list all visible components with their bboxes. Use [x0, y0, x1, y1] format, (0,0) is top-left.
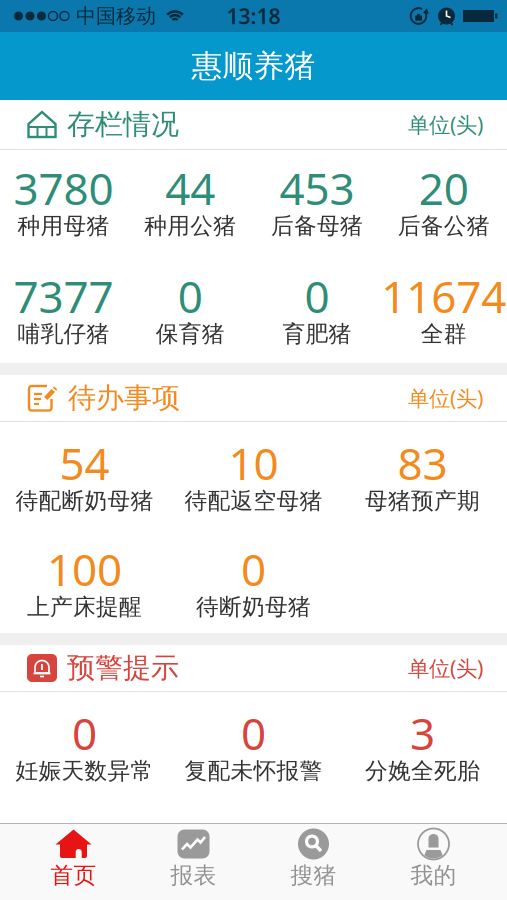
staticText: 44	[165, 159, 215, 217]
staticText: 哺乳仔猪	[17, 320, 109, 348]
staticText: 存栏情况	[67, 107, 179, 142]
staticText: 单位(头)	[408, 384, 483, 412]
staticText: 0	[241, 704, 266, 762]
staticText: 报表	[170, 862, 216, 889]
staticText: 单位(头)	[408, 654, 483, 682]
staticText: 后备公猪	[398, 212, 490, 240]
staticText: 11674	[381, 267, 506, 325]
staticText: 20	[419, 159, 469, 217]
staticText: 首页	[50, 862, 96, 889]
staticText: 上产床提醒	[27, 593, 142, 621]
staticText: 7377	[13, 267, 113, 325]
staticText: 待断奶母猪	[196, 593, 311, 621]
staticText: 后备母猪	[271, 212, 363, 240]
staticText: 453	[279, 159, 354, 217]
staticText: 我的	[410, 862, 456, 889]
staticText: 分娩全死胎	[365, 757, 480, 785]
staticText: 预警提示	[67, 651, 179, 685]
staticText: 0	[178, 267, 203, 325]
staticText: 妊娠天数异常	[15, 757, 153, 785]
staticText: 单位(头)	[408, 110, 483, 139]
staticText: 3	[410, 704, 435, 762]
staticText: 10	[228, 434, 278, 492]
button[interactable]: 报表	[133, 824, 253, 900]
button[interactable]: 搜猪	[253, 824, 373, 900]
staticText: 0	[241, 540, 266, 598]
staticText: 保育猪	[156, 320, 225, 348]
staticText: 育肥猪	[282, 320, 351, 348]
staticText: 0	[72, 704, 97, 762]
staticText: 100	[47, 540, 122, 598]
staticText: 种用母猪	[17, 212, 109, 240]
staticText: 搜猪	[290, 862, 336, 889]
staticText: 待办事项	[68, 381, 180, 415]
staticText: 种用公猪	[144, 212, 236, 240]
staticText: 54	[59, 434, 109, 492]
staticText: 3780	[13, 159, 113, 217]
button[interactable]: 首页	[13, 824, 133, 900]
staticText: 复配未怀报警	[184, 757, 322, 785]
staticText: 13:18	[226, 2, 280, 30]
staticText: 待配返空母猪	[184, 487, 322, 515]
staticText: 0	[304, 267, 329, 325]
staticText: 惠顺养猪	[191, 47, 315, 85]
staticText: 待配断奶母猪	[15, 487, 153, 515]
staticText: 中国移动	[76, 4, 156, 28]
staticText: 母猪预产期	[365, 487, 480, 515]
staticText: 全群	[421, 320, 467, 348]
button[interactable]: 我的	[373, 824, 493, 900]
staticText: 83	[397, 434, 447, 492]
